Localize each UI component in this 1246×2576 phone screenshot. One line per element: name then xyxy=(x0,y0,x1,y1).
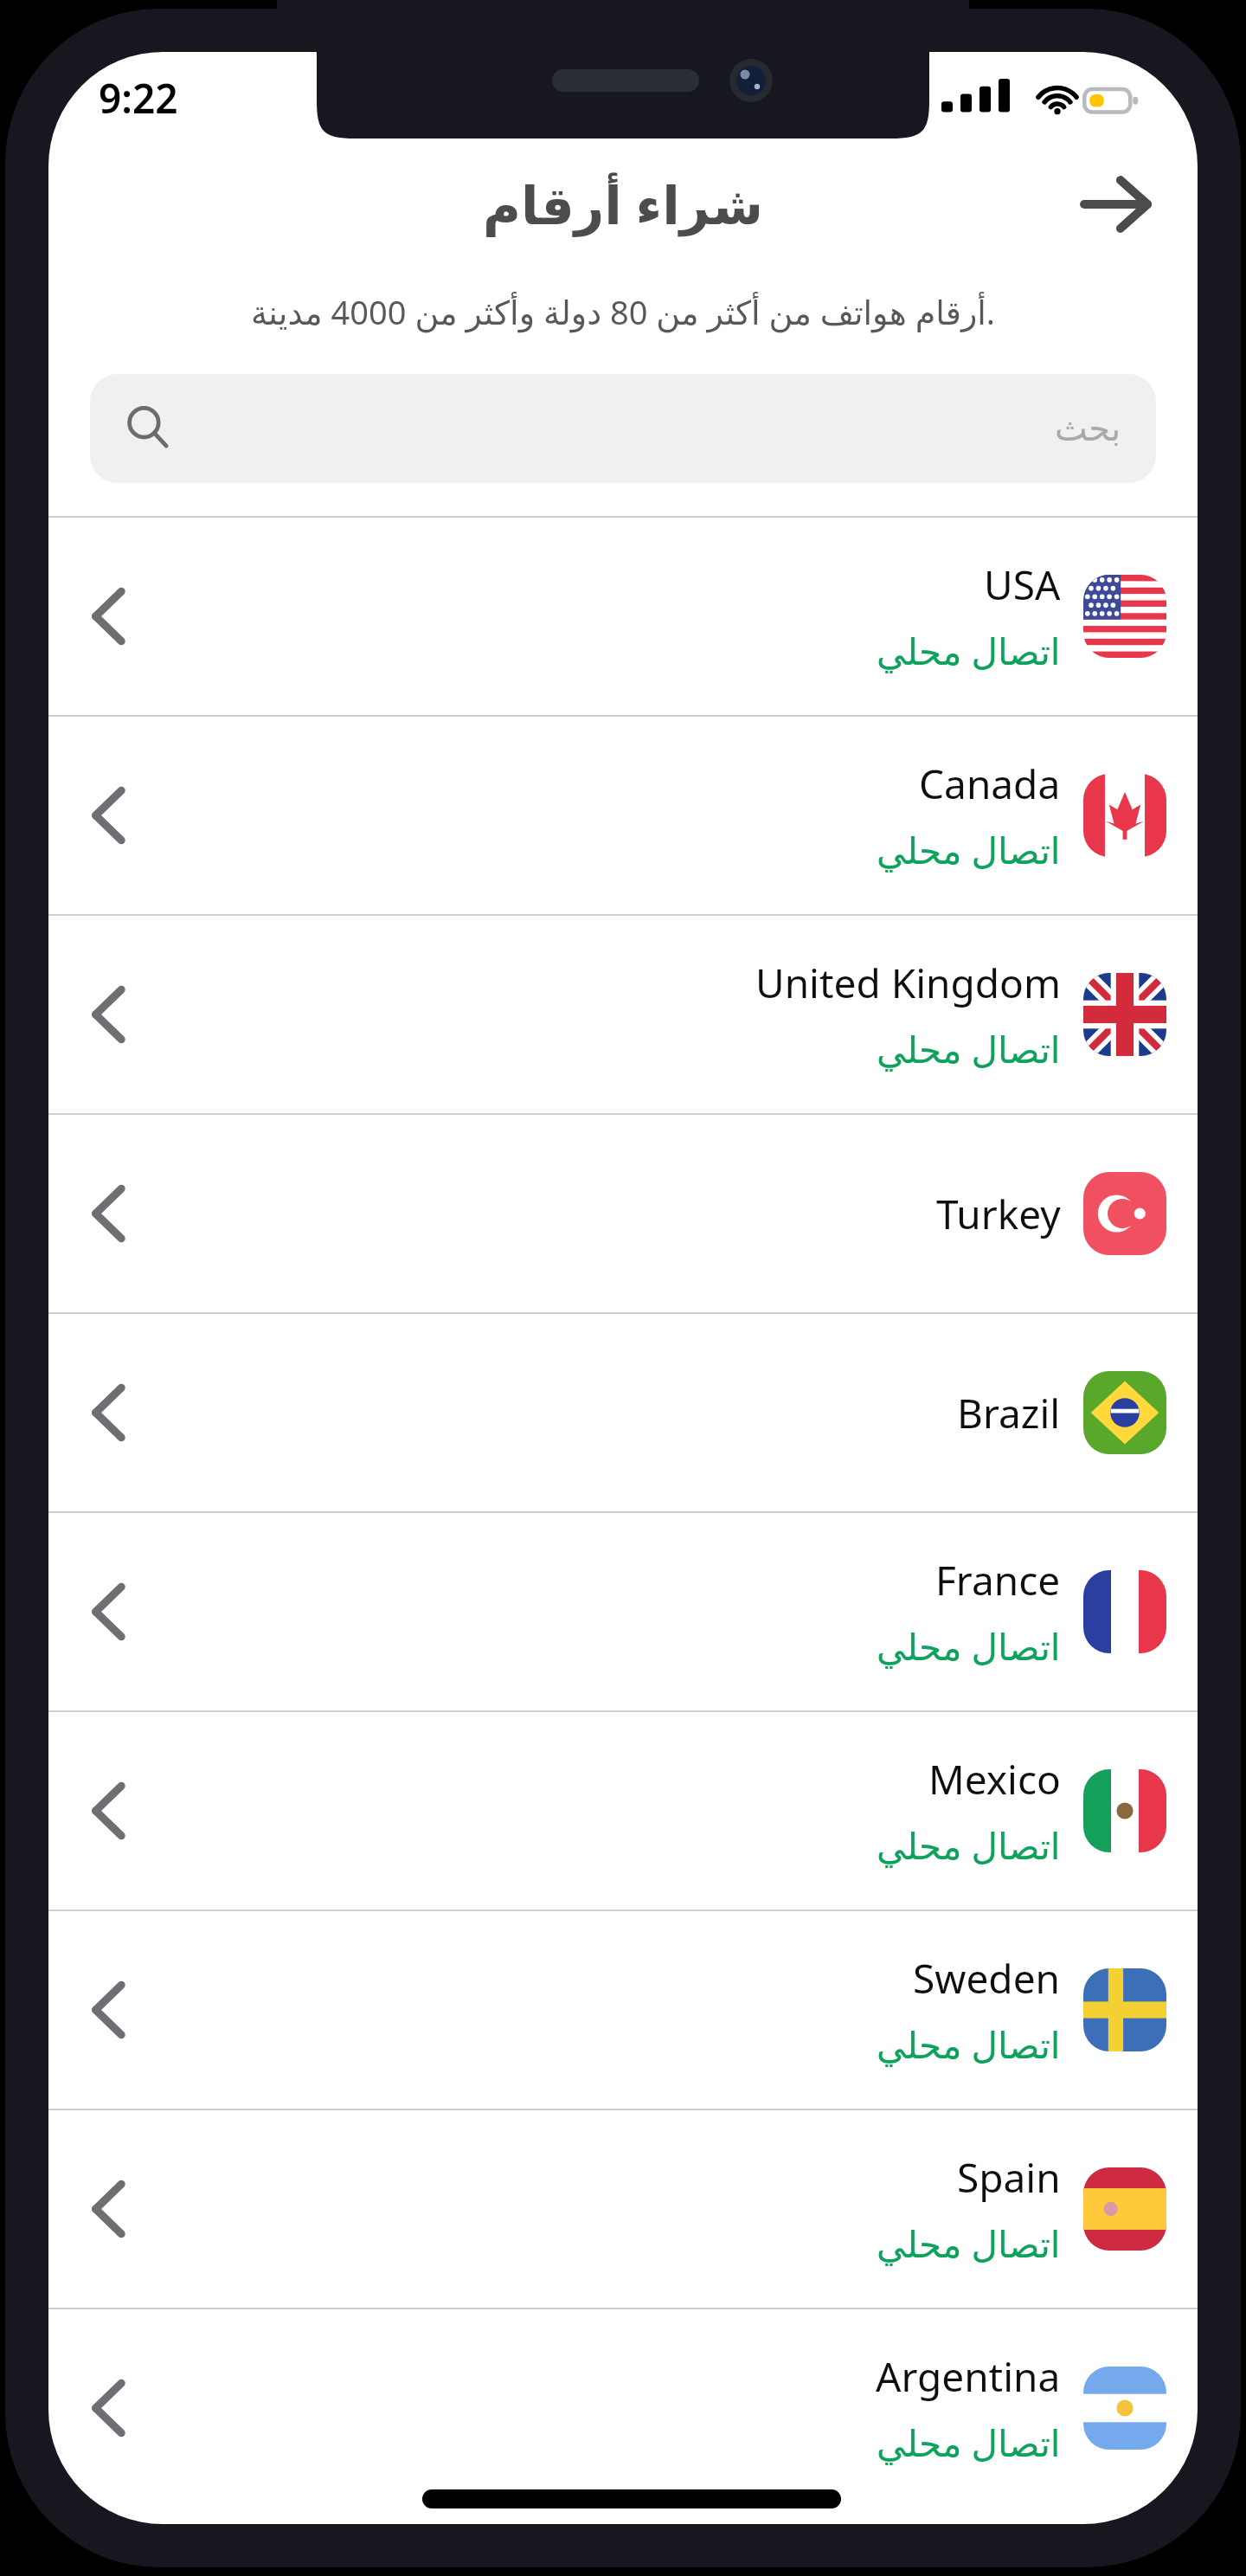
button[interactable]: France xyxy=(48,1513,1198,1710)
staticText: اتصال محلي xyxy=(877,1621,1061,1671)
staticText: Mexico xyxy=(928,1752,1061,1806)
staticText: USA xyxy=(984,557,1061,612)
button[interactable]: USA xyxy=(48,518,1198,715)
button[interactable]: United Kingdom xyxy=(48,916,1198,1113)
staticText: شراء أرقام xyxy=(483,169,764,240)
staticText: Turkey xyxy=(936,1187,1061,1241)
button[interactable]: بحث xyxy=(90,374,1156,483)
staticText: اتصال محلي xyxy=(877,2219,1061,2268)
staticText: 9:22 xyxy=(99,71,178,126)
staticText: أرقام هواتف من أكثر من 80 دولة وأكثر من … xyxy=(66,289,1180,334)
button[interactable]: Brazil xyxy=(48,1314,1198,1511)
staticText: Sweden xyxy=(913,1951,1061,2006)
staticText: Canada xyxy=(919,757,1061,811)
staticText: اتصال محلي xyxy=(877,1024,1061,1073)
button[interactable]: Sweden xyxy=(48,1911,1198,2109)
staticText: France xyxy=(935,1553,1061,1607)
button[interactable]: Turkey xyxy=(48,1115,1198,1312)
staticText: Argentina xyxy=(876,2349,1061,2404)
button[interactable]: Continue xyxy=(1066,154,1166,254)
button[interactable]: Argentina xyxy=(48,2309,1198,2507)
staticText: اتصال محلي xyxy=(877,2418,1061,2467)
staticText: Spain xyxy=(957,2150,1061,2205)
staticText: اتصال محلي xyxy=(877,626,1061,675)
button[interactable]: Spain xyxy=(48,2110,1198,2308)
staticText: اتصال محلي xyxy=(877,825,1061,874)
staticText: Brazil xyxy=(957,1386,1061,1440)
staticText: United Kingdom xyxy=(755,956,1061,1010)
button[interactable]: Canada xyxy=(48,717,1198,914)
staticText: اتصال محلي xyxy=(877,1820,1061,1870)
staticText: اتصال محلي xyxy=(877,2019,1061,2069)
staticText: بحث xyxy=(1055,409,1121,449)
button[interactable]: Mexico xyxy=(48,1712,1198,1909)
